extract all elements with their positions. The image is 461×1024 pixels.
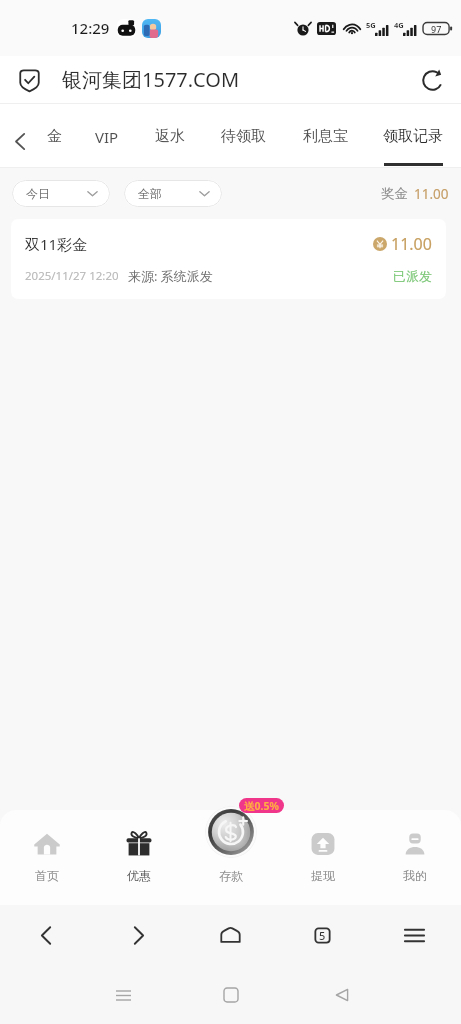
button[interactable]: 首页 (0, 810, 93, 905)
staticText: 奖金 (381, 185, 408, 202)
button[interactable]: Security info (16, 67, 42, 93)
staticText: 今日 (26, 186, 50, 201)
button[interactable]: Refresh (417, 65, 447, 95)
button[interactable]: 双11彩金 (11, 219, 446, 299)
button[interactable]: 今日 (12, 180, 110, 207)
button[interactable]: Tabs (276, 905, 368, 965)
staticText: 97 (431, 23, 442, 35)
button[interactable]: Menu (368, 905, 460, 965)
button[interactable]: Forward (92, 905, 184, 965)
staticText: 5G (366, 20, 376, 30)
button[interactable]: 我的 (369, 810, 461, 905)
button[interactable]: Back (327, 980, 357, 1010)
staticText: 金 (47, 127, 62, 146)
staticText: 11.00 (391, 233, 432, 255)
button[interactable]: Recents (108, 980, 138, 1010)
staticText: 待领取 (221, 127, 266, 146)
button[interactable]: 待领取 (213, 104, 273, 167)
button[interactable]: 存款 (205, 806, 257, 858)
button[interactable]: Home (216, 980, 246, 1010)
button[interactable]: 提现 (277, 810, 369, 905)
staticText: 来源: 系统派发 (128, 267, 213, 285)
staticText: 首页 (35, 868, 59, 883)
button[interactable]: 返水 (147, 104, 192, 167)
button[interactable]: 金 (39, 104, 70, 167)
staticText: 4G (394, 20, 404, 30)
staticText: 领取记录 (383, 127, 443, 146)
staticText: 全部 (138, 186, 162, 201)
staticText: 2025/11/27 12:20 (25, 268, 119, 284)
staticText: 送0.5% (244, 799, 279, 813)
staticText: 银河集团1577.COM (62, 66, 240, 93)
staticText: 已派发 (393, 268, 432, 284)
staticText: 优惠 (127, 868, 151, 883)
button[interactable]: Home (184, 905, 276, 965)
button[interactable]: Back (6, 127, 34, 155)
staticText: 我的 (403, 868, 427, 883)
staticText: 12:29 (71, 18, 110, 38)
staticText: 返水 (155, 127, 185, 146)
staticText: 利息宝 (303, 127, 348, 146)
button[interactable]: 优惠 (93, 810, 185, 905)
staticText: 5 (319, 928, 326, 943)
staticText: 双11彩金 (25, 234, 88, 254)
button[interactable]: 利息宝 (295, 104, 355, 167)
staticText: 存款 (219, 868, 243, 883)
button[interactable]: 全部 (124, 180, 222, 207)
staticText: 提现 (311, 868, 335, 883)
button[interactable]: Back (0, 905, 92, 965)
staticText: 11.00 (414, 185, 449, 203)
button[interactable]: 领取记录 (375, 104, 450, 167)
staticText: VIP (95, 127, 119, 147)
button[interactable]: VIP (84, 104, 130, 167)
